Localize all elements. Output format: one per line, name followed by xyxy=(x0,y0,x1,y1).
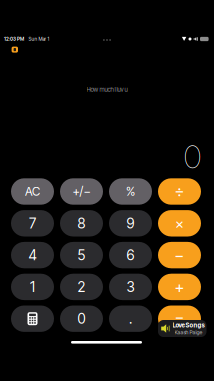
button[interactable]: Love Songs xyxy=(158,320,206,337)
staticText: × xyxy=(175,214,184,232)
staticText: % xyxy=(126,184,135,199)
staticText: 7 xyxy=(29,215,36,232)
staticText: − xyxy=(174,245,184,265)
button[interactable]: 8 xyxy=(60,210,103,236)
staticText: AC xyxy=(25,184,40,199)
button[interactable]: 6 xyxy=(109,242,152,268)
button[interactable]: 7 xyxy=(11,210,54,236)
button[interactable]: ÷ xyxy=(158,178,201,205)
button[interactable]: 1 xyxy=(11,274,54,300)
staticText: = xyxy=(174,309,184,328)
staticText: +/− xyxy=(72,184,90,199)
staticText: Love Songs xyxy=(172,321,204,329)
button[interactable]: AC xyxy=(11,178,54,205)
staticText: ÷ xyxy=(174,182,184,201)
button[interactable]: +/− xyxy=(60,178,103,205)
staticText: . xyxy=(129,310,132,327)
button[interactable]: % xyxy=(109,178,152,205)
button[interactable]: 4 xyxy=(11,242,54,268)
staticText: 1 xyxy=(30,278,35,295)
button[interactable]: = xyxy=(158,305,201,332)
button[interactable]: × xyxy=(158,210,201,236)
staticText: 0 xyxy=(77,310,85,327)
staticText: Sun Mar 1 xyxy=(28,36,49,42)
button[interactable]: . xyxy=(109,305,152,332)
button[interactable]: Calculator mode xyxy=(11,305,54,332)
staticText: 5 xyxy=(77,247,85,263)
staticText: 4 xyxy=(28,247,36,263)
staticText: 0 xyxy=(184,138,201,175)
staticText: 12:03 PM xyxy=(4,36,24,42)
staticText: Kaash Paige xyxy=(174,329,202,335)
staticText: 8 xyxy=(77,215,85,232)
button[interactable]: 3 xyxy=(109,274,152,300)
staticText: 6 xyxy=(126,247,134,263)
staticText: 3 xyxy=(126,278,134,295)
staticText: How much I luv u xyxy=(86,86,127,93)
button[interactable]: − xyxy=(158,242,201,268)
button[interactable]: 9 xyxy=(109,210,152,236)
staticText: + xyxy=(174,277,184,297)
staticText: 9 xyxy=(126,215,134,232)
staticText: 2 xyxy=(77,278,85,295)
button[interactable]: 5 xyxy=(60,242,103,268)
button[interactable]: + xyxy=(158,274,201,300)
button[interactable]: 0 xyxy=(60,305,103,332)
button[interactable]: 2 xyxy=(60,274,103,300)
